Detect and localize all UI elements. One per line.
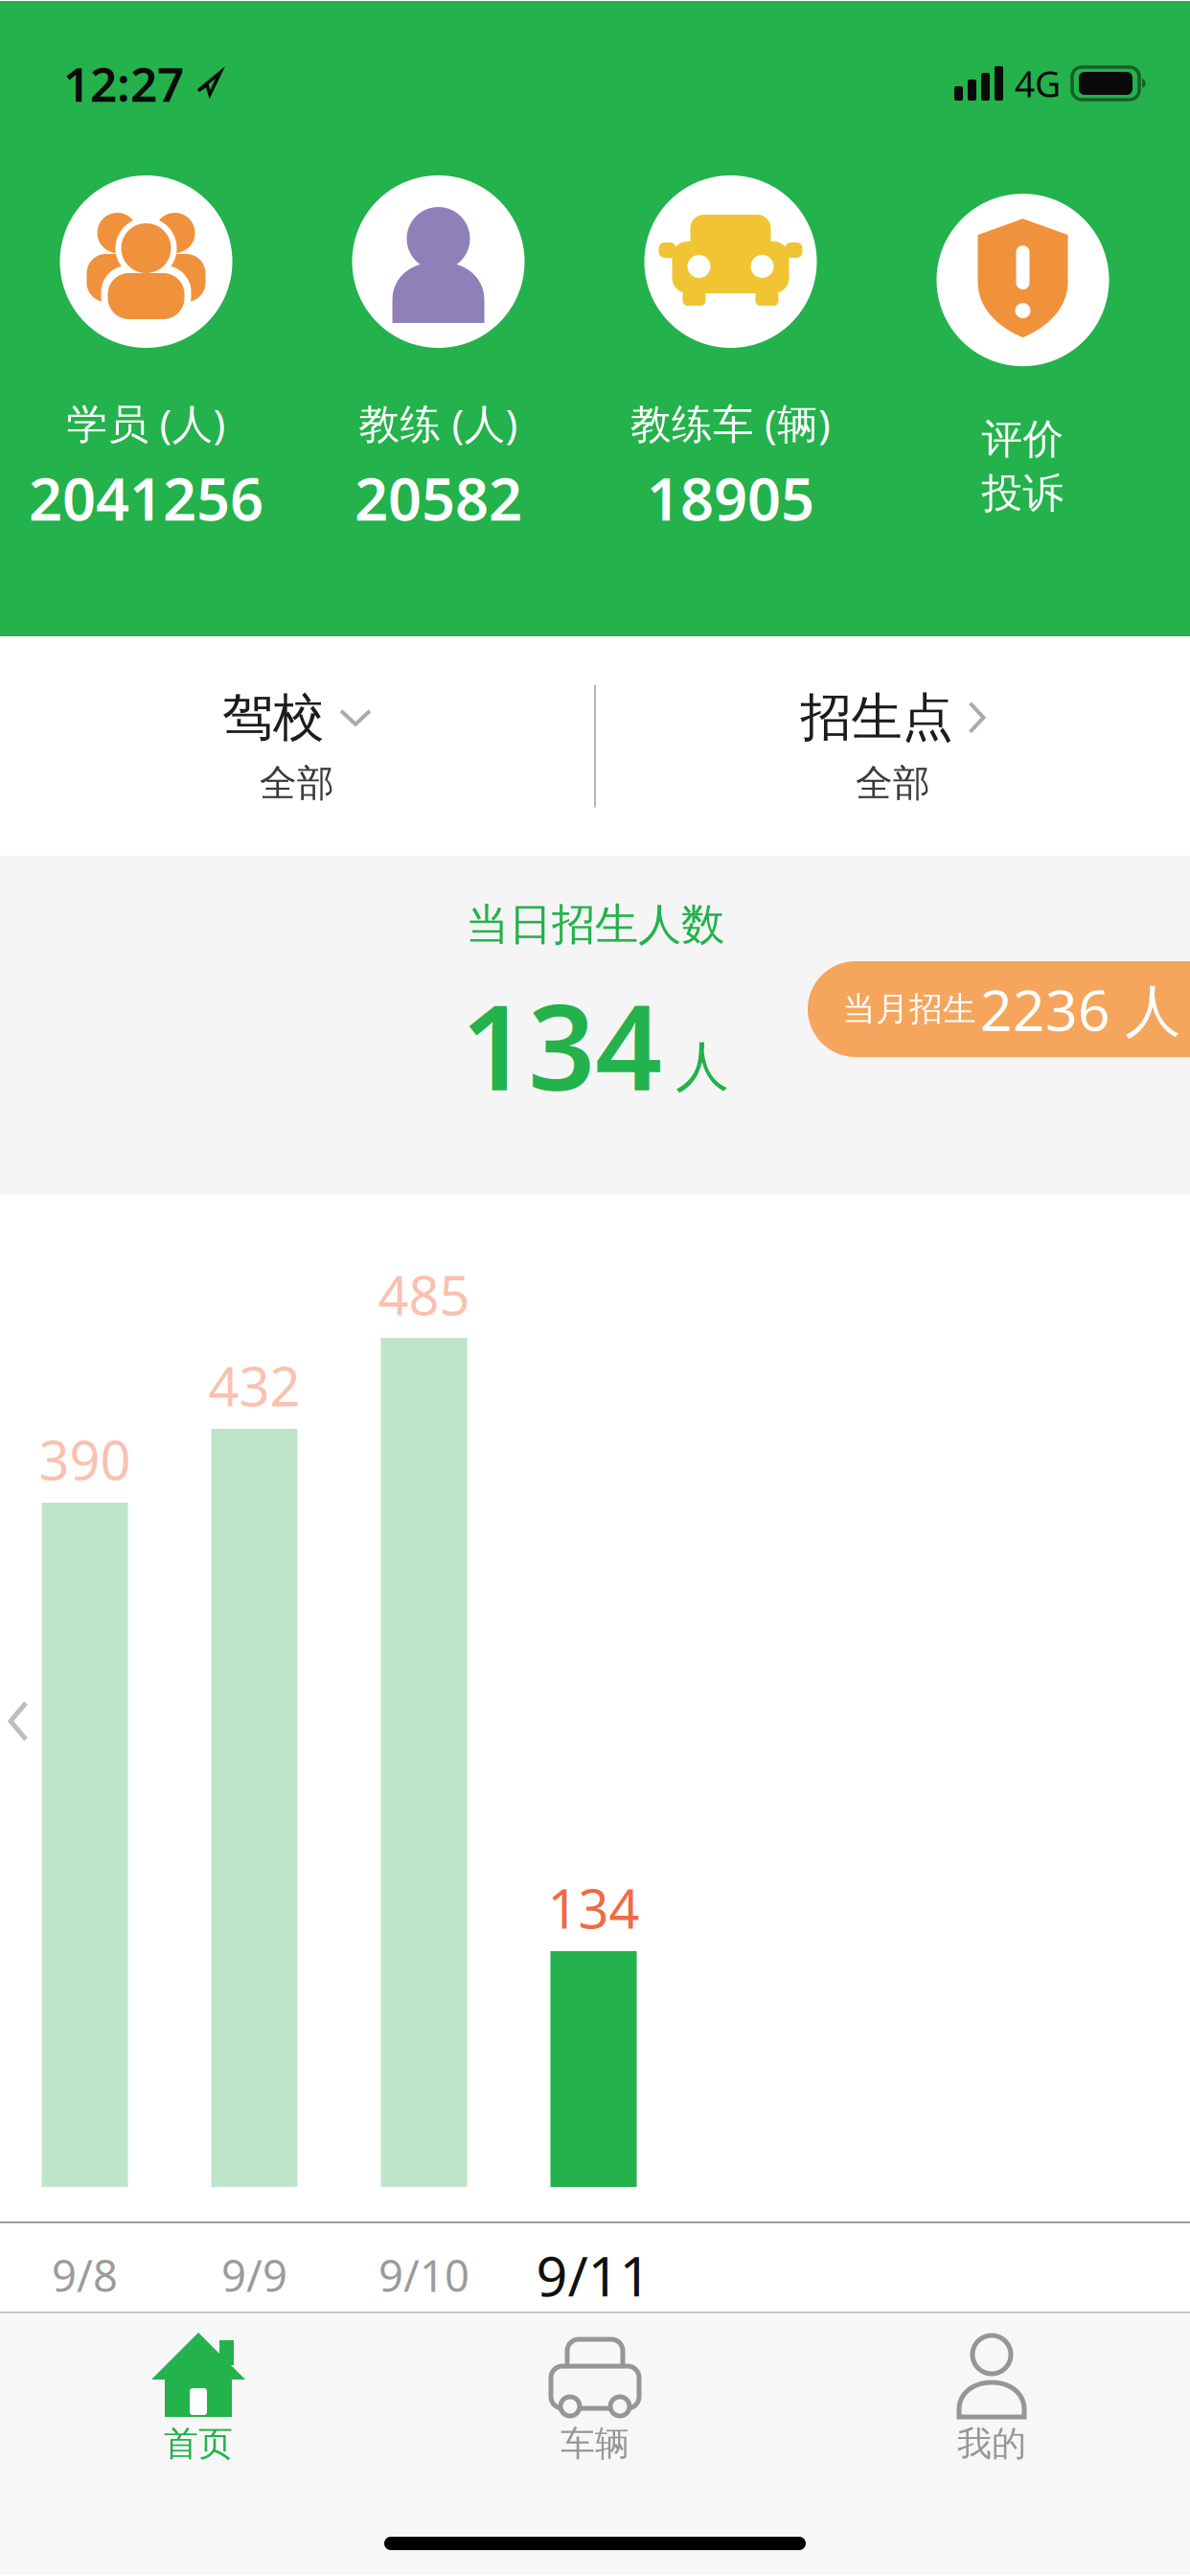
staticText: 9/10 [378, 2246, 469, 2304]
staticText: 2236 人 [980, 972, 1181, 1046]
staticText: 招生点 [801, 686, 953, 749]
button[interactable]: 招生点 [596, 686, 1190, 806]
staticText: 人 [675, 1034, 729, 1100]
button[interactable]: Previous days [8, 1700, 29, 1742]
staticText: 学员 (人) [67, 396, 226, 450]
staticText: 20582 [355, 459, 522, 537]
staticText: 教练车 (辆) [630, 396, 831, 450]
staticText: 投诉 [982, 468, 1064, 518]
button[interactable]: 车辆 [397, 2329, 793, 2465]
staticText: 134 [461, 967, 662, 1123]
button[interactable]: 驾校 [0, 686, 594, 806]
button[interactable]: 学员 (人) [0, 175, 292, 537]
button[interactable]: 教练 (人) [292, 175, 584, 537]
button[interactable]: 首页 [0, 2329, 397, 2465]
staticText: 390 [39, 1424, 131, 1495]
staticText: 评价 [982, 414, 1064, 464]
staticText: 2041256 [29, 459, 263, 537]
staticText: 全部 [260, 760, 334, 806]
staticText: 134 [548, 1872, 640, 1943]
staticText: 12:27 [63, 52, 184, 115]
button[interactable]: 评价 [877, 194, 1169, 518]
staticText: 18905 [647, 459, 814, 537]
staticText: 9/9 [221, 2246, 287, 2304]
staticText: 485 [378, 1259, 470, 1330]
staticText: 9/11 [536, 2239, 651, 2311]
staticText: 9/8 [52, 2246, 118, 2304]
button[interactable]: 我的 [793, 2329, 1190, 2465]
staticText: 我的 [957, 2423, 1026, 2465]
staticText: 首页 [164, 2423, 233, 2465]
staticText: 432 [208, 1350, 300, 1421]
staticText: 车辆 [561, 2423, 629, 2465]
staticText: 当日招生人数 [466, 898, 724, 951]
button[interactable]: 教练车 (辆) [584, 175, 877, 537]
staticText: 教练 (人) [359, 396, 518, 450]
staticText: 驾校 [222, 686, 324, 749]
staticText: 全部 [856, 760, 930, 806]
staticText: 4G [1015, 60, 1061, 107]
staticText: 当月招生 [842, 989, 976, 1030]
